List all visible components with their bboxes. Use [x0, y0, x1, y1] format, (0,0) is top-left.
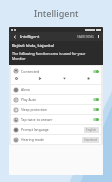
- staticText: Hearing mode: [21, 137, 44, 142]
- staticText: The following function area is used for …: [12, 51, 86, 61]
- button[interactable]: Function 2: [62, 76, 66, 80]
- button[interactable]: More options: [96, 34, 101, 39]
- button[interactable]: Connected: [11, 66, 101, 84]
- button[interactable]: Prompt language: [11, 125, 101, 134]
- button[interactable]: Play Auto: [11, 95, 101, 104]
- staticText: Tap twice to answer: [21, 117, 53, 122]
- button[interactable]: Function 1: [38, 76, 42, 80]
- staticText: Intelligent: [34, 7, 79, 19]
- button[interactable]: Toggle: [93, 108, 99, 111]
- staticText: Connected: [21, 69, 40, 74]
- button[interactable]: Sleep protection: [11, 105, 101, 114]
- button[interactable]: Toggle: [93, 118, 99, 121]
- staticText: Alexa: [21, 87, 30, 92]
- button[interactable]: Hearing mode: [11, 135, 101, 144]
- button[interactable]: Toggle: [93, 70, 99, 73]
- button[interactable]: Back: [11, 33, 18, 40]
- button[interactable]: Alexa: [11, 85, 101, 94]
- staticText: Sleep protection: [21, 107, 48, 112]
- staticText: Intelligent: [20, 34, 40, 39]
- button[interactable]: Function 0: [14, 76, 18, 80]
- staticText: Bejövő hívás, kisjunkol: [12, 43, 55, 48]
- staticText: Standard: [84, 138, 97, 142]
- staticText: Play Auto: [21, 97, 36, 102]
- staticText: Prompt language: [21, 127, 49, 132]
- button[interactable]: Tap twice to answer: [11, 115, 101, 124]
- button[interactable]: Toggle: [93, 98, 99, 101]
- staticText: SEARCHING: [77, 35, 94, 39]
- button[interactable]: Function 3: [86, 76, 90, 80]
- staticText: English: [86, 128, 97, 132]
